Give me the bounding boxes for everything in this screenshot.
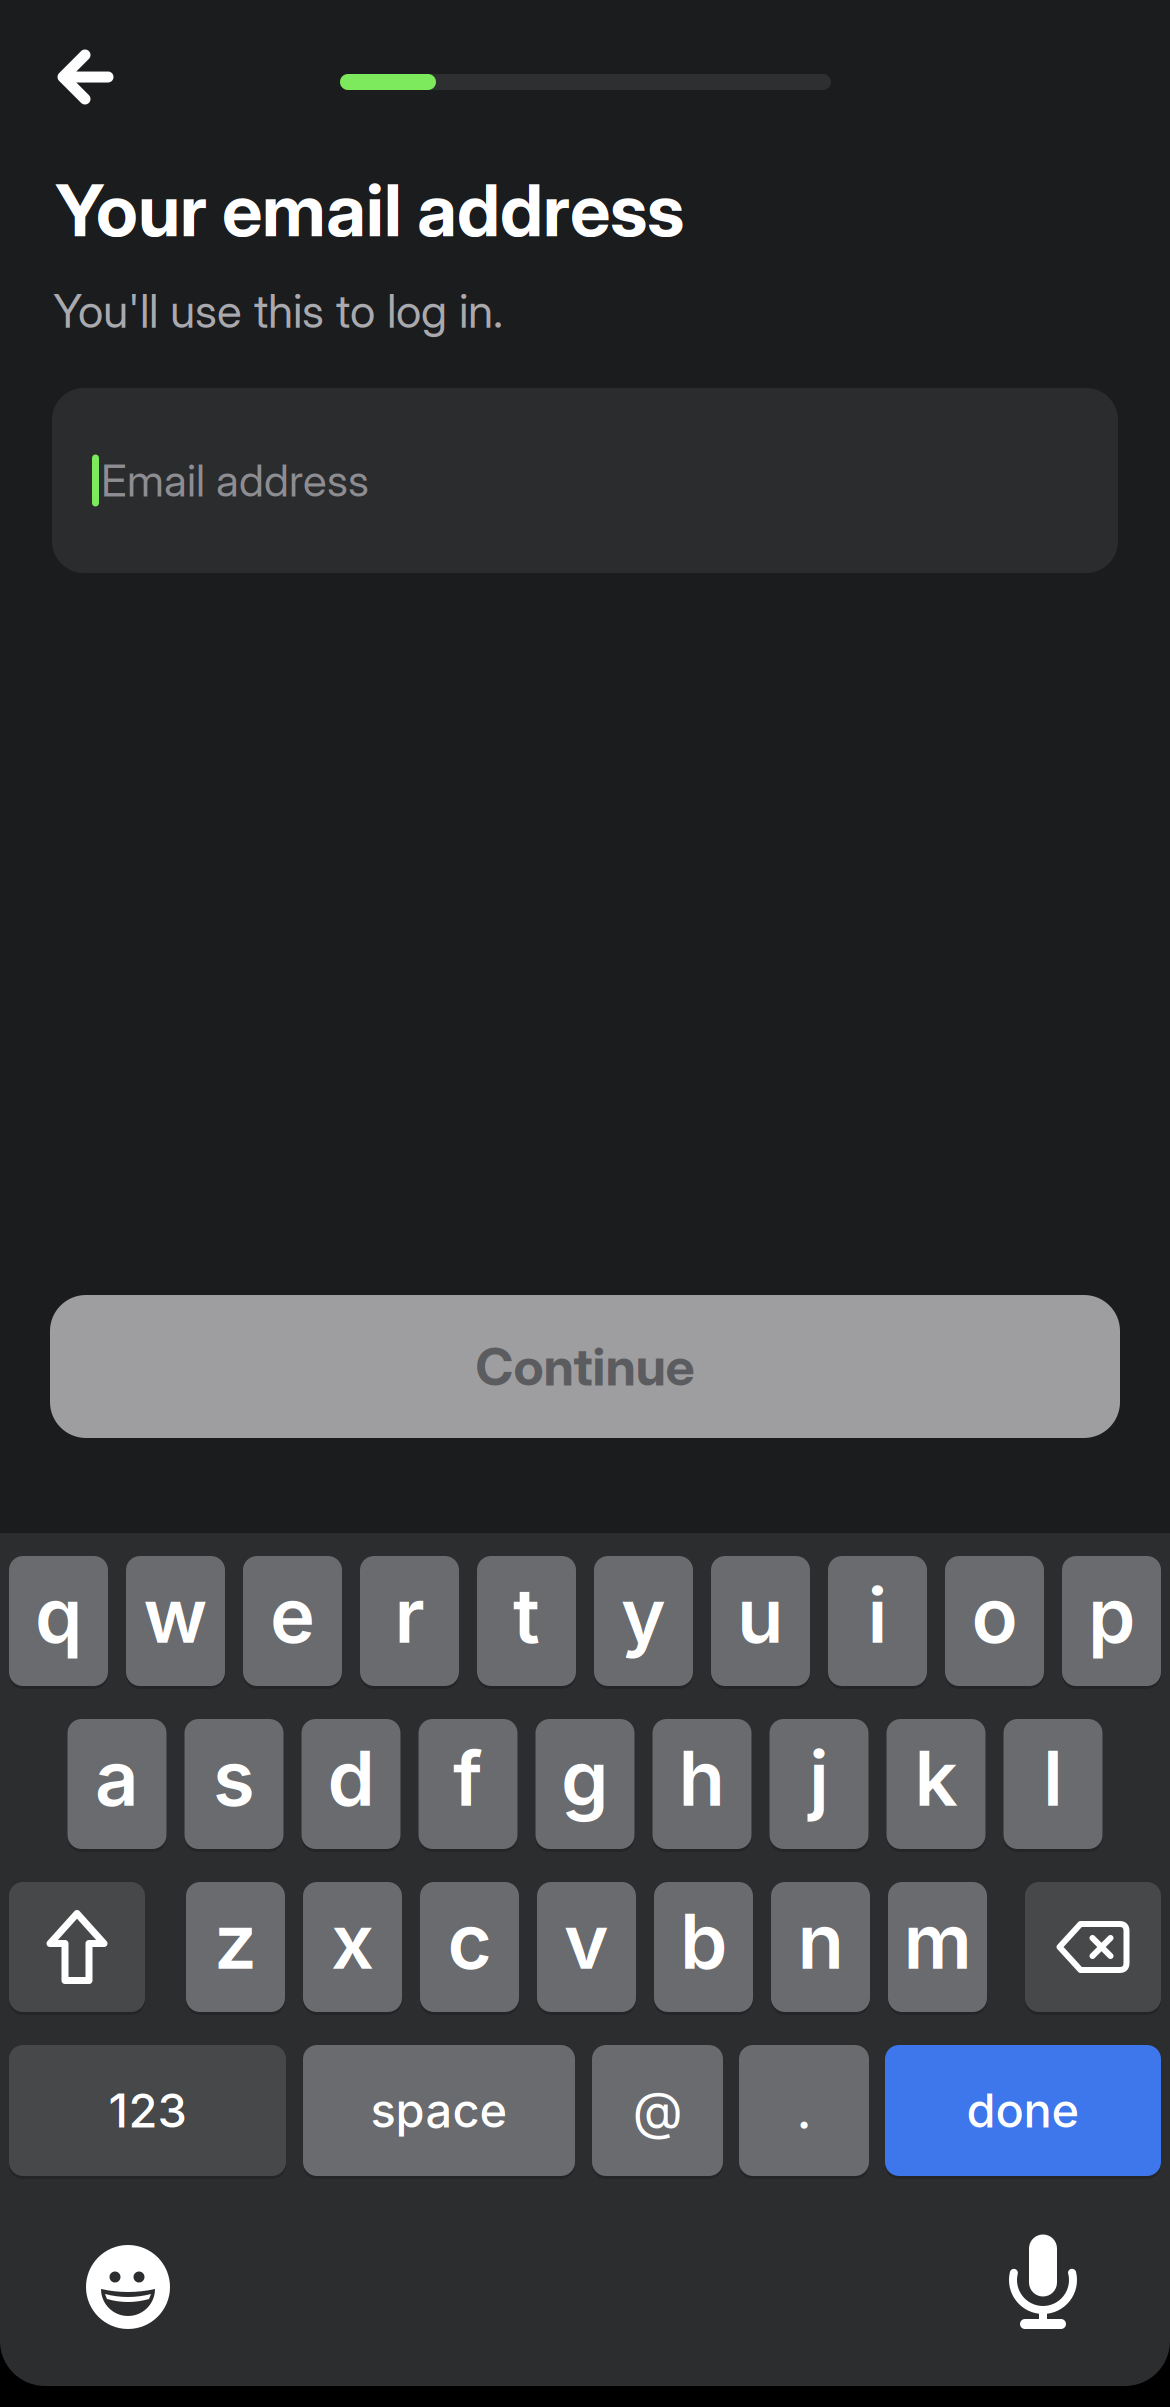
button[interactable]: a	[67, 1719, 166, 1849]
staticText: y	[621, 1569, 666, 1661]
button[interactable]: l	[1003, 1719, 1102, 1849]
staticText: 123	[108, 2082, 186, 2139]
staticText: Email address	[101, 454, 369, 507]
button[interactable]: c	[420, 1882, 519, 2012]
button[interactable]: Shift	[9, 1882, 145, 2012]
button[interactable]: Emoji	[86, 2245, 170, 2329]
button[interactable]: v	[537, 1882, 636, 2012]
button[interactable]: Back	[59, 51, 111, 103]
staticText: h	[678, 1732, 725, 1824]
button[interactable]: Dictation	[998, 2223, 1088, 2343]
staticText: r	[394, 1569, 424, 1661]
button[interactable]: Space	[303, 2045, 575, 2176]
button[interactable]: Numbers	[9, 2045, 286, 2176]
staticText: l	[1043, 1732, 1063, 1824]
button[interactable]: g	[535, 1719, 634, 1849]
staticText: e	[270, 1569, 315, 1661]
staticText: t	[513, 1569, 540, 1661]
staticText: Continue	[475, 1335, 694, 1398]
staticText: space	[370, 2082, 507, 2139]
button[interactable]: e	[243, 1556, 342, 1686]
staticText: q	[35, 1569, 82, 1661]
button[interactable]: Email address	[52, 388, 1118, 573]
staticText: @	[632, 2079, 682, 2142]
staticText: .	[796, 2080, 811, 2141]
button[interactable]: p	[1062, 1556, 1161, 1686]
staticText: v	[564, 1895, 609, 1987]
staticText: b	[680, 1895, 727, 1987]
button[interactable]: q	[9, 1556, 108, 1686]
button[interactable]: y	[594, 1556, 693, 1686]
button[interactable]: d	[301, 1719, 400, 1849]
button[interactable]: i	[828, 1556, 927, 1686]
staticText: a	[95, 1732, 139, 1824]
button[interactable]: r	[360, 1556, 459, 1686]
staticText: j	[809, 1732, 829, 1824]
button[interactable]: f	[418, 1719, 517, 1849]
staticText: g	[561, 1732, 609, 1824]
button[interactable]: Period	[739, 2045, 869, 2176]
button[interactable]: t	[477, 1556, 576, 1686]
staticText: z	[214, 1895, 257, 1987]
button[interactable]: o	[945, 1556, 1044, 1686]
staticText: k	[914, 1732, 957, 1824]
staticText: i	[867, 1569, 887, 1661]
staticText: p	[1088, 1569, 1135, 1661]
staticText: Your email address	[55, 166, 684, 253]
staticText: c	[447, 1895, 491, 1987]
button[interactable]: k	[886, 1719, 985, 1849]
staticText: m	[903, 1895, 971, 1987]
staticText: d	[327, 1732, 374, 1824]
staticText: u	[737, 1569, 784, 1661]
button[interactable]: w	[126, 1556, 225, 1686]
button[interactable]: n	[771, 1882, 870, 2012]
staticText: f	[453, 1732, 483, 1824]
button[interactable]: x	[303, 1882, 402, 2012]
button[interactable]: Continue	[50, 1295, 1120, 1438]
button[interactable]: z	[186, 1882, 285, 2012]
staticText: n	[797, 1895, 843, 1987]
button[interactable]: h	[652, 1719, 751, 1849]
staticText: w	[143, 1569, 207, 1661]
staticText: You'll use this to log in.	[53, 283, 503, 339]
button[interactable]: At	[592, 2045, 723, 2176]
button[interactable]: j	[769, 1719, 868, 1849]
staticText: s	[213, 1732, 255, 1824]
staticText: done	[966, 2082, 1079, 2139]
button[interactable]: m	[888, 1882, 987, 2012]
button[interactable]: b	[654, 1882, 753, 2012]
staticText: x	[331, 1895, 374, 1987]
button[interactable]: Done	[885, 2045, 1161, 2176]
button[interactable]: s	[184, 1719, 283, 1849]
staticText: o	[971, 1569, 1017, 1661]
button[interactable]: Delete	[1025, 1882, 1161, 2012]
button[interactable]: u	[711, 1556, 810, 1686]
